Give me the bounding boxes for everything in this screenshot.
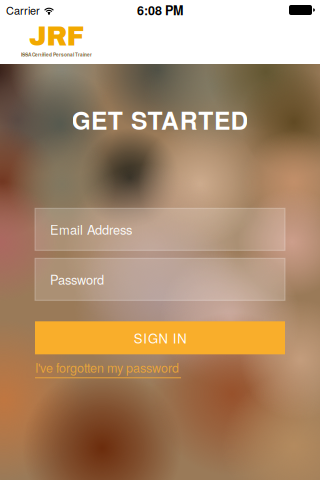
button[interactable]: SIGN IN [35, 321, 285, 354]
staticText: JRF [29, 22, 84, 51]
staticText: I've forgotten my password [35, 358, 179, 376]
staticText: 6:08 PM [137, 1, 183, 19]
staticText: GET STARTED [71, 102, 248, 137]
staticText: Password [50, 270, 104, 288]
staticText: Carrier [6, 2, 40, 18]
staticText: SIGN IN [134, 328, 186, 347]
button[interactable]: I've forgotten my password [35, 358, 181, 378]
staticText: Email Address [50, 220, 132, 238]
staticText: ISSA Certified Personal Trainer [21, 51, 92, 58]
